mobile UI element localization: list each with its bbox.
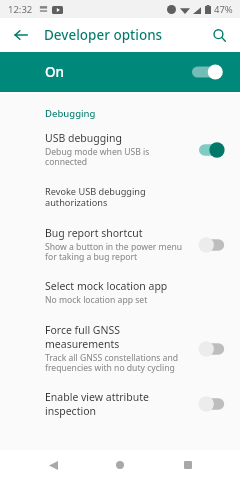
staticText: Developer options [44,26,163,44]
staticText: Force full GNSS measurements [45,323,121,351]
button[interactable]: Select mock location app [0,277,240,308]
button[interactable]: Force full GNSS measurements [198,339,230,359]
staticText: Track all GNSS constellations and freque… [45,352,178,374]
button[interactable]: Bug report shortcut [198,235,230,255]
staticText: Debug mode when USB is connected [45,146,150,168]
button[interactable]: Search [206,22,232,48]
staticText: Debugging [45,107,96,120]
staticText: USB debugging [45,131,122,145]
button[interactable]: Enable view attribute inspection [0,388,240,420]
button[interactable]: Bug report shortcut [0,224,240,265]
button[interactable]: Force full GNSS measurements [0,321,240,376]
staticText: 47% [214,3,233,16]
staticText: 12:32 [8,3,33,16]
button[interactable]: Home [105,450,135,480]
button[interactable]: Recents [173,450,203,480]
button[interactable]: USB debugging [198,140,230,160]
staticText: Select mock location app [45,279,168,293]
staticText: Revoke USB debugging authorizations [45,185,198,209]
button[interactable]: Back [8,22,34,48]
button[interactable]: On [0,52,240,92]
staticText: No mock location app set [45,294,148,306]
button[interactable]: Back [38,450,68,480]
button[interactable]: Revoke USB debugging authorizations [0,183,240,211]
staticText: Bug report shortcut [45,226,143,240]
button[interactable]: USB debugging [0,129,240,170]
staticText: Enable view attribute inspection [45,390,149,418]
button[interactable]: Enable view attribute inspection [198,394,230,414]
staticText: On [45,63,65,81]
staticText: Show a button in the power menu for taki… [45,241,183,263]
